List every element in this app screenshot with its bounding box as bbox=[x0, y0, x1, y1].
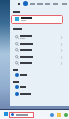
button[interactable] bbox=[11, 15, 63, 24]
button[interactable] bbox=[10, 84, 69, 90]
button[interactable]: Browser bbox=[50, 113, 54, 117]
button[interactable] bbox=[10, 34, 69, 40]
button[interactable] bbox=[10, 47, 69, 53]
button[interactable] bbox=[10, 41, 69, 47]
button[interactable] bbox=[10, 91, 69, 97]
button[interactable] bbox=[10, 54, 69, 60]
button[interactable]: Account bbox=[23, 1, 28, 6]
button[interactable]: App bbox=[64, 113, 68, 117]
button[interactable] bbox=[9, 112, 34, 118]
button[interactable] bbox=[10, 60, 69, 66]
button[interactable] bbox=[10, 72, 69, 78]
